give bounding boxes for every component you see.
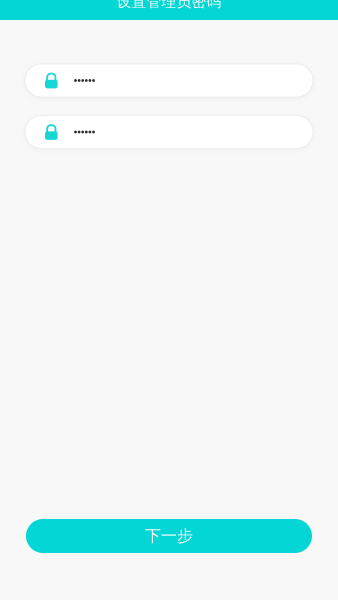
staticText: 下一步 bbox=[145, 526, 193, 546]
button[interactable]: 下一步 bbox=[26, 519, 312, 553]
button[interactable]: 确认密码 bbox=[25, 115, 313, 148]
button[interactable]: 管理员密码 bbox=[25, 64, 313, 97]
staticText: 设置管理员密码 bbox=[116, 0, 221, 11]
